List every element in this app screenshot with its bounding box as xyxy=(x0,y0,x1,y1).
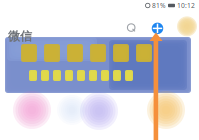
staticText: 微信 xyxy=(8,29,32,44)
staticText: 81% xyxy=(152,1,166,10)
button[interactable]: Shortcut two xyxy=(57,95,87,125)
button[interactable]: Shortcut three xyxy=(80,92,118,130)
button[interactable]: Search xyxy=(124,20,140,36)
button[interactable]: 微信 xyxy=(6,26,34,47)
button[interactable]: Shortcut one xyxy=(13,91,51,129)
button[interactable]: Profile xyxy=(177,16,197,36)
button[interactable]: Shortcut four xyxy=(147,91,185,129)
staticText: 10:12 xyxy=(177,1,195,10)
button[interactable]: Add xyxy=(149,20,165,36)
